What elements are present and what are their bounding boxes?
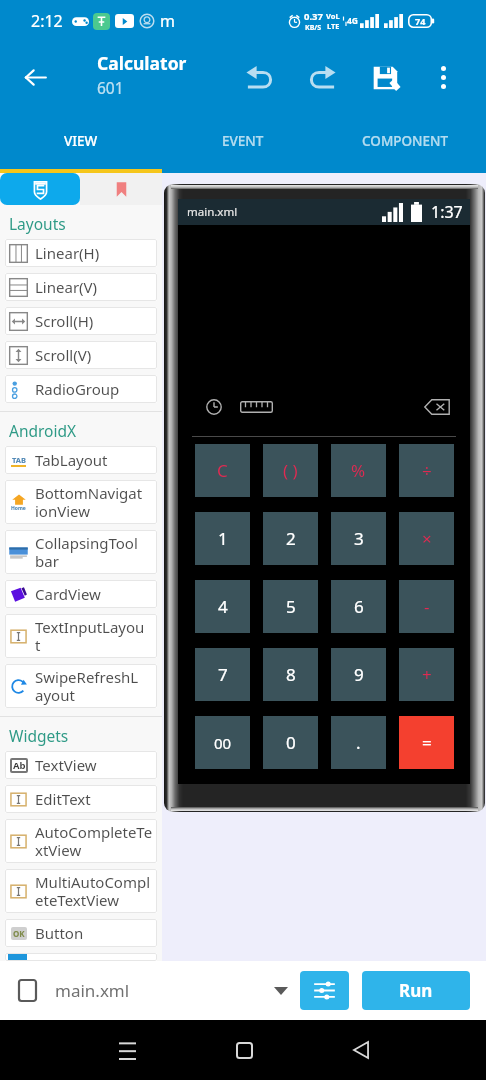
button[interactable]: VIEW: [0, 112, 162, 169]
button[interactable]: OK: [5, 919, 157, 947]
button[interactable]: main.xml: [0, 961, 300, 1020]
staticText: 1: [218, 527, 228, 550]
button[interactable]: Settings: [300, 971, 349, 1010]
button[interactable]: 7: [195, 648, 250, 701]
button[interactable]: 9: [331, 648, 386, 701]
button[interactable]: 2: [263, 512, 318, 565]
staticText: BottomNavigat ionView: [35, 483, 143, 522]
staticText: EVENT: [222, 132, 264, 150]
button[interactable]: Home: [222, 1028, 266, 1072]
button[interactable]: 8: [263, 648, 318, 701]
button[interactable]: AutoCompleteTe xtView: [5, 819, 157, 863]
button[interactable]: ÷: [399, 444, 454, 497]
staticText: 1:37: [431, 201, 463, 223]
button[interactable]: Undo: [228, 46, 291, 109]
button[interactable]: SwipeRefreshL ayout: [5, 664, 157, 708]
button[interactable]: Scroll(V): [5, 341, 157, 369]
staticText: %: [351, 459, 366, 482]
button[interactable]: Backspace: [423, 396, 450, 418]
button[interactable]: Scroll(H): [5, 307, 157, 335]
staticText: 5: [286, 595, 296, 618]
staticText: OK: [13, 928, 25, 939]
button[interactable]: 4: [195, 580, 250, 633]
staticText: Widgets: [9, 725, 69, 746]
staticText: Layouts: [9, 213, 66, 234]
staticText: CollapsingTool bar: [35, 533, 138, 572]
button[interactable]: +: [399, 648, 454, 701]
button[interactable]: Linear(V): [5, 273, 157, 301]
button[interactable]: Save: [354, 46, 417, 109]
button[interactable]: -: [399, 580, 454, 633]
staticText: main.xml: [55, 979, 130, 1002]
staticText: 4G: [347, 15, 359, 27]
staticText: TextInputLayou t: [35, 617, 145, 656]
button[interactable]: Recents: [105, 1028, 149, 1072]
staticText: Scroll(V): [35, 345, 92, 365]
button[interactable]: RadioGroup: [5, 375, 157, 403]
staticText: 6: [354, 595, 364, 618]
staticText: .: [356, 731, 361, 754]
button[interactable]: Widgets palette: [0, 173, 80, 205]
staticText: Home: [11, 505, 26, 512]
button[interactable]: TAB: [5, 446, 157, 474]
staticText: Linear(V): [35, 277, 98, 297]
button[interactable]: Run: [362, 971, 470, 1010]
button[interactable]: 0: [263, 716, 318, 769]
button[interactable]: =: [399, 716, 454, 769]
button[interactable]: 6: [331, 580, 386, 633]
staticText: VoL: [326, 11, 340, 21]
staticText: Scroll(H): [35, 311, 94, 331]
staticText: +: [422, 663, 432, 686]
staticText: 0: [286, 731, 296, 754]
button[interactable]: EditText: [5, 785, 157, 813]
button[interactable]: Ab: [5, 751, 157, 779]
button[interactable]: Linear(H): [5, 239, 157, 267]
button[interactable]: Back: [339, 1028, 383, 1072]
staticText: LTE: [327, 21, 340, 31]
staticText: CardView: [35, 584, 101, 604]
staticText: Ab: [13, 759, 26, 772]
staticText: 3: [354, 527, 364, 550]
button[interactable]: C: [195, 444, 250, 497]
button[interactable]: Redo: [291, 46, 354, 109]
staticText: ÷: [422, 459, 432, 482]
staticText: 9: [354, 663, 364, 686]
button[interactable]: TextInputLayou t: [5, 614, 157, 658]
button[interactable]: .: [331, 716, 386, 769]
button[interactable]: ( ): [263, 444, 318, 497]
staticText: TAB: [12, 455, 26, 465]
staticText: -: [424, 595, 430, 618]
staticText: Button: [35, 923, 84, 943]
button[interactable]: CollapsingTool bar: [5, 530, 157, 574]
button[interactable]: 1: [195, 512, 250, 565]
button[interactable]: 3: [331, 512, 386, 565]
staticText: Linear(H): [35, 243, 100, 263]
staticText: Run: [399, 979, 433, 1002]
button[interactable]: CardView: [5, 580, 157, 608]
button[interactable]: Unit converter: [239, 396, 273, 418]
staticText: ( ): [283, 459, 298, 482]
staticText: RadioGroup: [35, 379, 120, 399]
button[interactable]: MultiAutoCompl eteTextView: [5, 869, 157, 913]
button[interactable]: ×: [399, 512, 454, 565]
staticText: main.xml: [187, 204, 238, 220]
staticText: 00: [214, 733, 232, 753]
staticText: 2:12: [31, 10, 63, 32]
button[interactable]: 00: [195, 716, 250, 769]
button[interactable]: COMPONENT: [324, 112, 486, 169]
staticText: 601: [97, 77, 124, 98]
staticText: =: [422, 731, 432, 754]
button[interactable]: Home: [5, 480, 157, 524]
button[interactable]: More options: [417, 46, 470, 109]
button[interactable]: 5: [263, 580, 318, 633]
button[interactable]: Favorites: [80, 173, 162, 205]
button[interactable]: EVENT: [162, 112, 324, 169]
button[interactable]: Back: [0, 42, 70, 112]
staticText: COMPONENT: [362, 132, 449, 150]
staticText: C: [217, 459, 228, 482]
staticText: EditText: [35, 789, 91, 809]
button[interactable]: %: [331, 444, 386, 497]
button[interactable]: ImageView: [5, 953, 157, 961]
staticText: 4: [218, 595, 228, 618]
button[interactable]: History: [205, 396, 223, 418]
